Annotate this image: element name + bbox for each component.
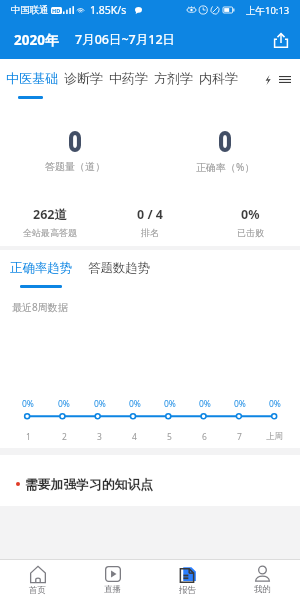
staticText: 内科学 (199, 70, 238, 86)
staticText: 需要加强学习的知识点 (25, 477, 153, 493)
staticText: 7 (237, 431, 242, 443)
button[interactable]: 中医基础 (3, 59, 61, 100)
staticText: 0 / 4 (137, 206, 163, 223)
staticText: 直播 (104, 584, 121, 595)
staticText: 4 (132, 431, 137, 443)
staticText: 262道 (33, 206, 67, 223)
staticText: 方剂学 (154, 70, 193, 86)
staticText: 正确率趋势 (10, 260, 72, 276)
staticText: 0% (269, 398, 281, 410)
staticText: 报告 (179, 585, 196, 596)
staticText: 0% (58, 398, 70, 410)
button[interactable]: 答题数趋势 (80, 250, 158, 292)
staticText: 1.85K/s (90, 3, 127, 17)
button[interactable]: 内科学 (196, 59, 241, 100)
staticText: 5 (167, 431, 172, 443)
staticText: 排名 (141, 227, 159, 238)
staticText: 中医基础 (6, 70, 58, 86)
staticText: 全站最高答题 (23, 227, 77, 238)
staticText: 0% (129, 398, 141, 410)
staticText: 0% (199, 398, 211, 410)
staticText: 6 (202, 431, 207, 443)
button[interactable]: 诊断学 (61, 59, 106, 100)
staticText: 最近8周数据 (12, 300, 68, 314)
staticText: 0% (94, 398, 106, 410)
staticText: 正确率（%） (196, 160, 255, 174)
button[interactable]: 报告 (150, 560, 225, 600)
button[interactable]: 首页 (0, 560, 75, 600)
staticText: 中药学 (109, 70, 148, 86)
button[interactable]: 直播 (75, 560, 150, 600)
staticText: 答题量（道） (45, 160, 105, 173)
button[interactable]: 我的 (225, 560, 300, 600)
staticText: 0% (164, 398, 176, 410)
staticText: 答题数趋势 (88, 260, 150, 276)
staticText: 中国联通 (11, 4, 49, 16)
button[interactable]: 方剂学 (151, 59, 196, 100)
staticText: 我的 (254, 584, 271, 595)
staticText: 诊断学 (64, 70, 103, 86)
button[interactable]: 分享 (270, 29, 292, 51)
staticText: 上午10:13 (246, 4, 290, 17)
staticText: 首页 (29, 585, 46, 596)
staticText: 0% (234, 398, 246, 410)
button[interactable]: 菜单 (279, 59, 291, 100)
staticText: 0% (241, 206, 260, 223)
staticText: 0% (22, 398, 34, 410)
staticText: 2 (62, 431, 67, 443)
button[interactable]: 正确率趋势 (2, 250, 80, 292)
staticText: 3 (97, 431, 102, 443)
staticText: HD (52, 7, 61, 14)
staticText: 2020年 (14, 31, 59, 49)
staticText: 1 (26, 431, 31, 443)
staticText: 上周 (266, 431, 283, 442)
staticText: 已击败 (237, 227, 264, 238)
staticText: 7月06日~7月12日 (75, 31, 176, 48)
button[interactable]: 闪电 (260, 59, 276, 100)
button[interactable]: 中药学 (106, 59, 151, 100)
